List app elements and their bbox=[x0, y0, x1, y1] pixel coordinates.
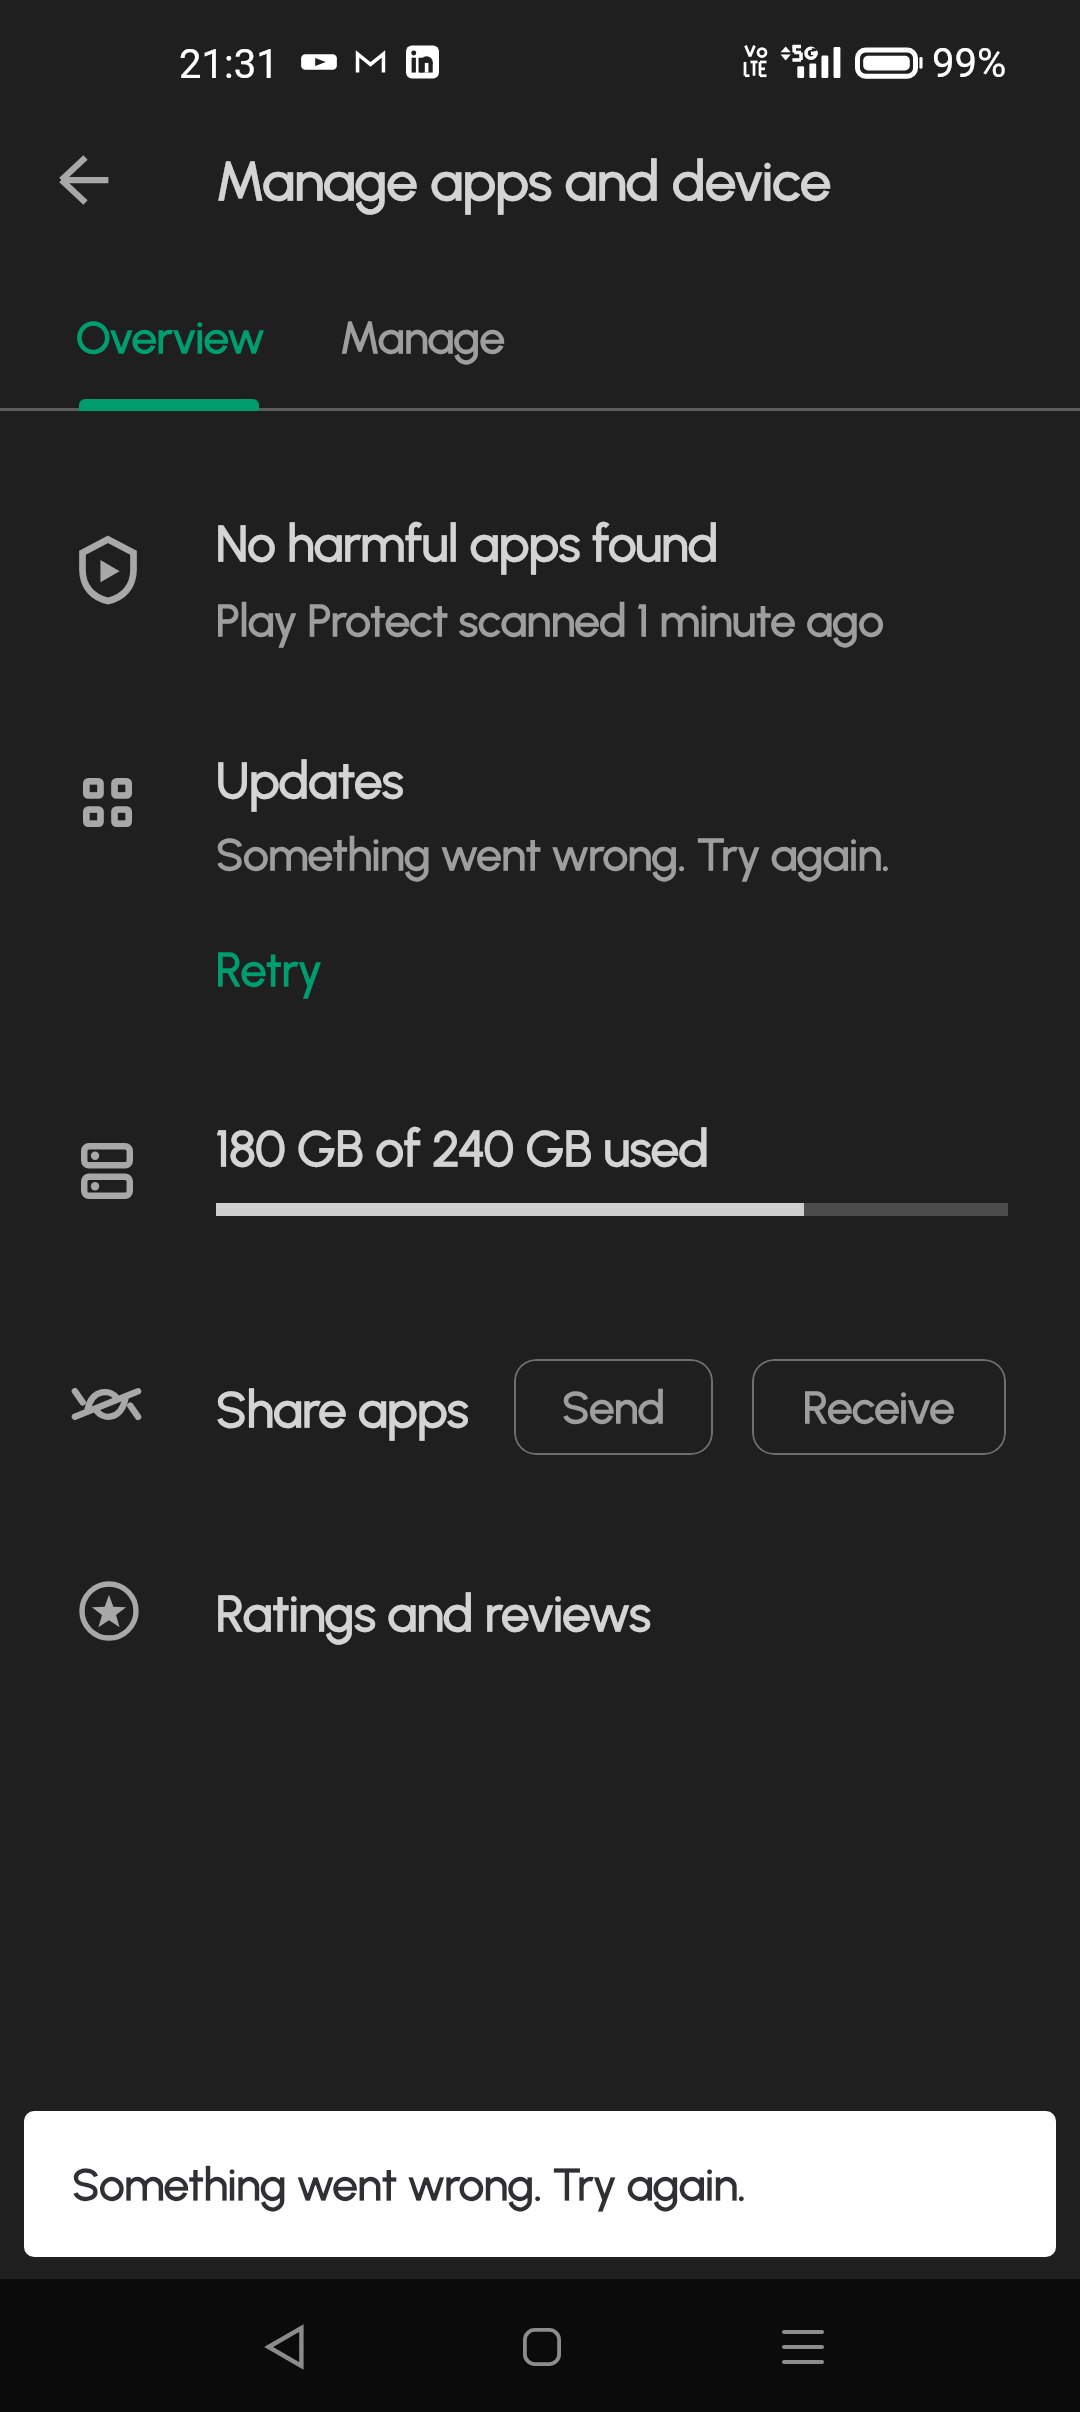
button[interactable]: Overview bbox=[0, 268, 258, 411]
button[interactable]: Send bbox=[514, 1359, 713, 1455]
button[interactable]: 180 GB of 240 GB used bbox=[0, 1096, 1080, 1282]
staticText: Ratings and reviews bbox=[216, 1583, 651, 1643]
staticText: Retry bbox=[216, 942, 322, 997]
staticText: Play Protect scanned 1 minute ago bbox=[216, 593, 884, 647]
staticText: Receive bbox=[803, 1380, 955, 1434]
button[interactable]: Retry bbox=[206, 942, 312, 997]
button[interactable]: No harmful apps found bbox=[0, 460, 1080, 682]
staticText: Something went wrong. Try again. bbox=[216, 827, 890, 881]
staticText: Overview bbox=[76, 310, 265, 364]
button[interactable]: Home bbox=[482, 2287, 602, 2407]
staticText: Send bbox=[562, 1380, 665, 1434]
staticText: Updates bbox=[216, 750, 404, 810]
button[interactable]: Manage bbox=[258, 268, 504, 411]
staticText: Share apps bbox=[216, 1379, 469, 1439]
staticText: Manage apps and device bbox=[216, 148, 831, 214]
button[interactable]: Ratings and reviews bbox=[0, 1545, 1080, 1685]
staticText: 99% bbox=[932, 40, 1007, 87]
staticText: 21:31 bbox=[179, 41, 279, 88]
button[interactable]: Updates bbox=[0, 712, 1080, 1058]
staticText: 180 GB of 240 GB used bbox=[216, 1118, 709, 1178]
button[interactable]: Back bbox=[225, 2287, 345, 2407]
button[interactable]: Navigate up bbox=[22, 112, 146, 248]
staticText: No harmful apps found bbox=[216, 513, 718, 573]
staticText: Manage bbox=[340, 310, 505, 364]
button[interactable]: Recent apps bbox=[743, 2287, 863, 2407]
button[interactable]: Something went wrong. Try again. bbox=[24, 2111, 1056, 2257]
staticText: Something went wrong. Try again. bbox=[72, 2157, 746, 2211]
button[interactable]: Receive bbox=[752, 1359, 1006, 1455]
